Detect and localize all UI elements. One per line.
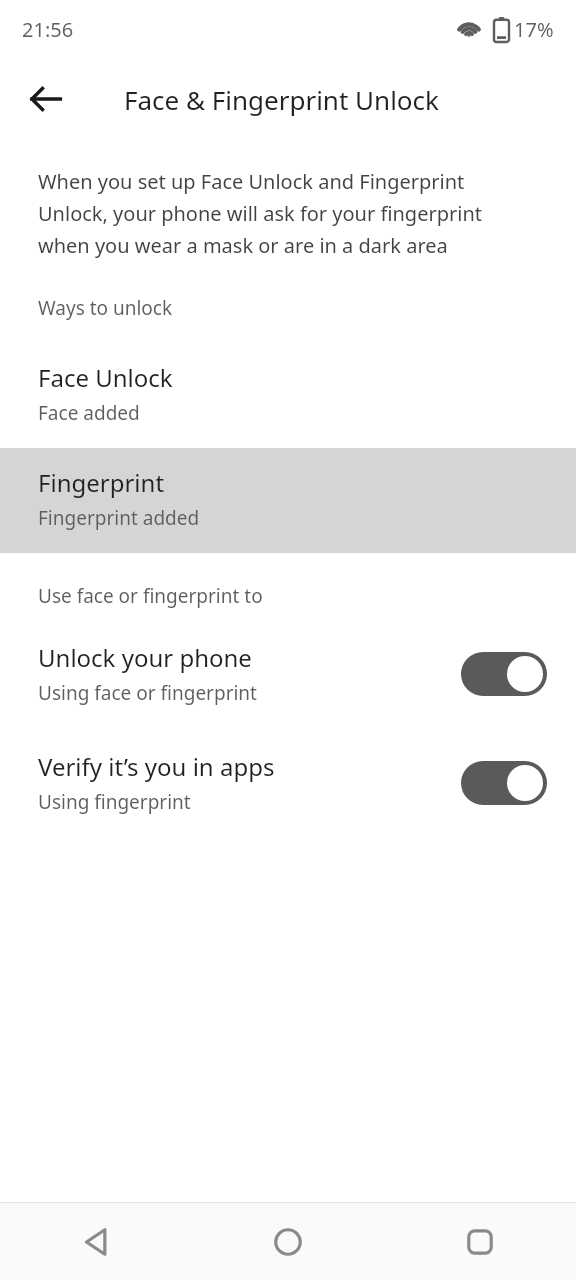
button[interactable]: Fingerprint: [0, 448, 576, 553]
staticText: Use face or fingerprint to: [38, 583, 263, 609]
staticText: Using face or fingerprint: [38, 680, 257, 706]
staticText: Ways to unlock: [38, 295, 173, 321]
staticText: 17%: [514, 16, 554, 43]
staticText: Unlock, your phone will ask for your fin…: [38, 200, 482, 227]
button[interactable]: Verify it’s you in apps: [0, 736, 576, 829]
staticText: when you wear a mask or are in a dark ar…: [38, 232, 448, 259]
staticText: When you set up Face Unlock and Fingerpr…: [38, 168, 465, 195]
button[interactable]: Toggle on: [461, 652, 547, 696]
staticText: Face added: [38, 400, 140, 426]
staticText: Fingerprint: [38, 466, 165, 499]
button[interactable]: Back: [0, 1203, 192, 1280]
button[interactable]: Unlock your phone: [0, 627, 576, 720]
staticText: Unlock your phone: [38, 641, 252, 674]
button[interactable]: Toggle on: [461, 761, 547, 805]
staticText: Fingerprint added: [38, 505, 200, 531]
button[interactable]: Face Unlock: [0, 343, 576, 448]
button[interactable]: Recent apps: [384, 1203, 576, 1280]
button[interactable]: Home: [192, 1203, 384, 1280]
staticText: Verify it’s you in apps: [38, 750, 275, 783]
button[interactable]: Back: [12, 65, 80, 133]
staticText: Using fingerprint: [38, 789, 191, 815]
staticText: 21:56: [22, 16, 74, 43]
staticText: Face & Fingerprint Unlock: [124, 82, 439, 117]
staticText: Face Unlock: [38, 361, 173, 394]
